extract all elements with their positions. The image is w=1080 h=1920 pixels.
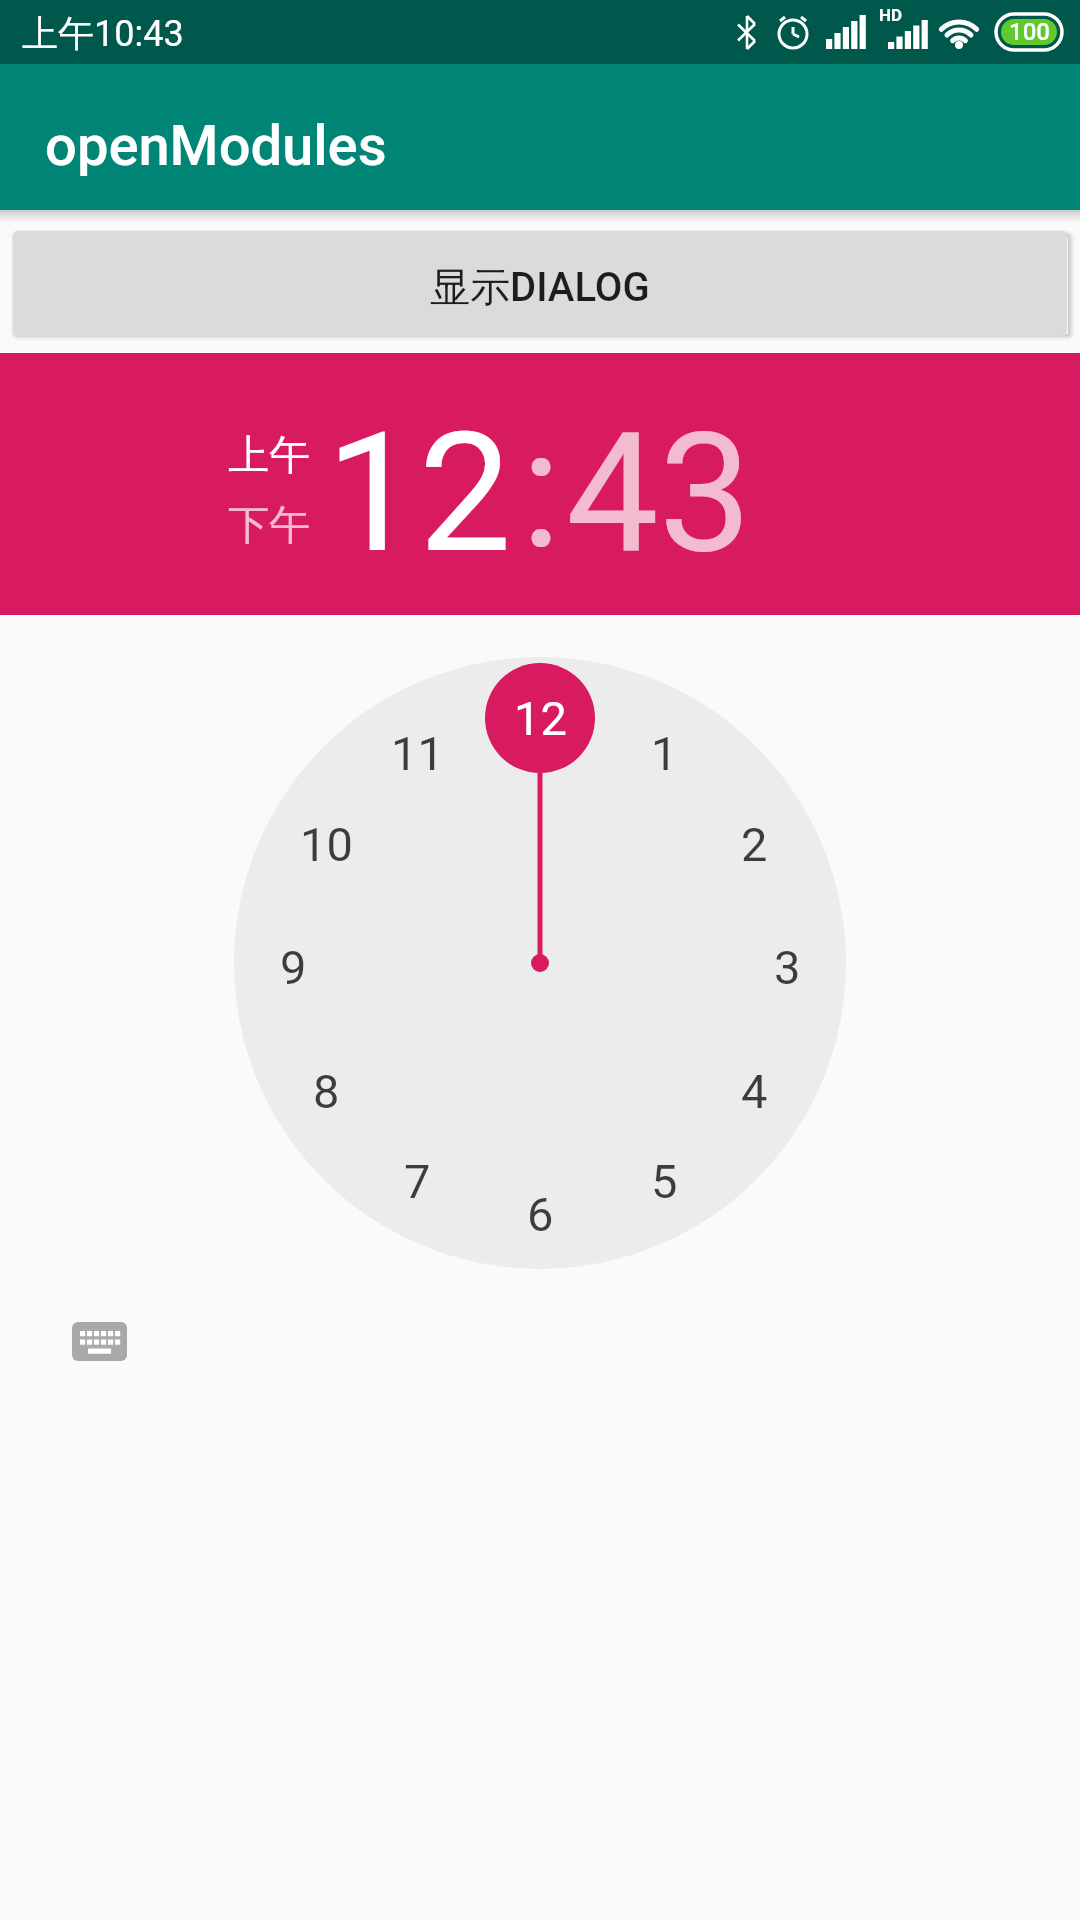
staticText: 43 — [566, 397, 752, 590]
button[interactable]: 11 — [372, 708, 462, 798]
button[interactable]: 5 — [619, 1136, 709, 1226]
staticText: : — [521, 393, 561, 586]
staticText: 2 — [741, 817, 768, 872]
button[interactable]: 4 — [709, 1046, 799, 1136]
button[interactable]: 8 — [281, 1046, 371, 1136]
staticText: 9 — [280, 940, 307, 995]
staticText: 上午10:43 — [22, 11, 184, 56]
button[interactable]: 显示DIALOG — [13, 231, 1067, 336]
button[interactable]: 下午 — [228, 500, 310, 552]
button[interactable]: 10 — [281, 799, 371, 889]
staticText: HD — [879, 5, 903, 25]
button[interactable]: 1 — [619, 708, 709, 798]
button[interactable]: 7 — [372, 1136, 462, 1226]
staticText: 100 — [1009, 18, 1050, 46]
staticText: 10 — [300, 817, 353, 872]
staticText: 显示DIALOG — [430, 262, 650, 312]
button[interactable]: 12 — [495, 673, 585, 763]
button[interactable]: 6 — [495, 1169, 585, 1259]
staticText: 3 — [774, 940, 801, 995]
staticText: 5 — [651, 1154, 678, 1209]
staticText: openModules — [45, 113, 387, 179]
staticText: 8 — [313, 1064, 340, 1119]
staticText: 11 — [391, 726, 444, 781]
staticText: 7 — [404, 1154, 431, 1209]
staticText: 6 — [527, 1187, 554, 1242]
button[interactable] — [72, 1322, 127, 1361]
button[interactable]: 上午 — [228, 430, 310, 482]
staticText: 12 — [514, 691, 567, 746]
button[interactable]: 3 — [742, 922, 832, 1012]
staticText: 4 — [741, 1064, 768, 1119]
button[interactable]: 2 — [709, 799, 799, 889]
staticText: 1 — [651, 726, 678, 781]
button[interactable]: 9 — [248, 922, 338, 1012]
staticText: 12 — [326, 397, 512, 590]
